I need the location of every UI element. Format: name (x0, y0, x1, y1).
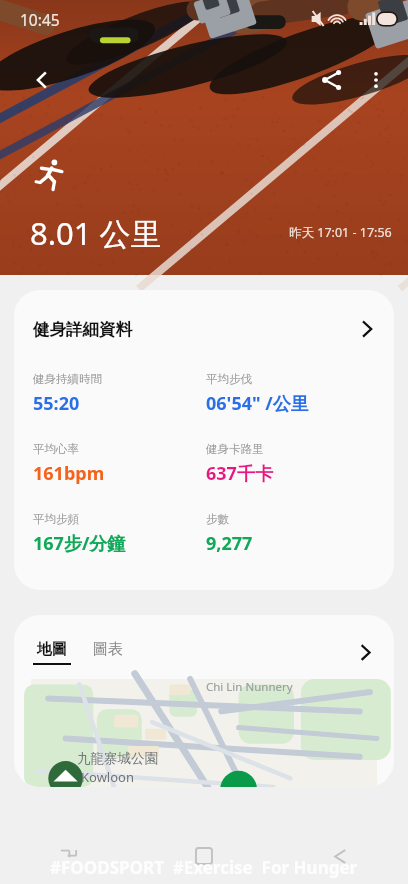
button[interactable]: 健身詳細資料 (14, 290, 394, 350)
button[interactable]: Back (20, 58, 64, 102)
staticText: 健身持續時間 (33, 372, 102, 386)
staticText: 平均心率 (33, 442, 79, 456)
staticText: 161bpm (33, 461, 105, 486)
staticText: #FOODSPORT #Exercise For Hunger (50, 856, 358, 879)
staticText: 9,277 (206, 531, 253, 556)
staticText: Kowloon (81, 768, 134, 786)
staticText: 昨天 17:01 - 17:56 (289, 224, 392, 241)
staticText: 步數 (206, 512, 229, 526)
staticText: 55:20 (33, 391, 80, 416)
staticText: 圖表 (93, 640, 123, 659)
staticText: 06'54" /公里 (206, 391, 309, 416)
staticText: 健身卡路里 (206, 442, 264, 456)
staticText: 平均步伐 (206, 372, 252, 386)
staticText: 九龍寨城公園 (77, 750, 158, 767)
staticText: 10:45 (20, 9, 60, 30)
button[interactable]: Home (188, 840, 220, 872)
button[interactable]: More options (354, 58, 398, 102)
button[interactable]: 圖表 (93, 640, 123, 665)
button[interactable]: Back (324, 840, 356, 872)
button[interactable]: Open map (350, 637, 380, 667)
button[interactable]: Recent apps (52, 840, 84, 872)
staticText: 地圖 (37, 640, 67, 659)
staticText: 8.01 公里 (30, 212, 162, 254)
staticText: 健身詳細資料 (33, 319, 354, 340)
staticText: 平均步頻 (33, 512, 79, 526)
staticText: Chi Lin Nunnery (206, 679, 293, 695)
button[interactable]: Share (310, 58, 354, 102)
button[interactable]: 地圖 (33, 640, 71, 665)
staticText: 167步/分鐘 (33, 531, 126, 556)
staticText: 637千卡 (206, 461, 273, 486)
